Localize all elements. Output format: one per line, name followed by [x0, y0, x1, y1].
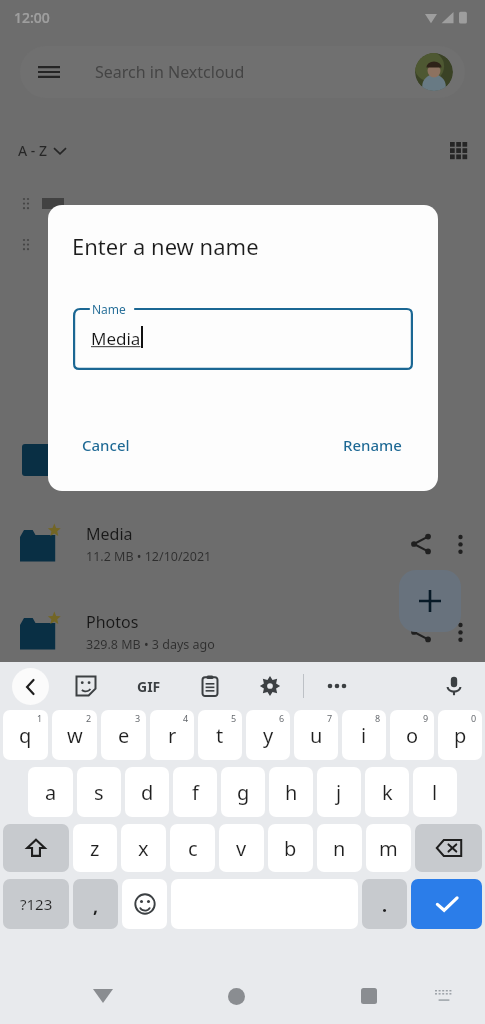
button[interactable]: j — [317, 767, 361, 817]
staticText: g — [237, 779, 250, 806]
button[interactable]: Photos — [0, 597, 485, 667]
button[interactable]: x — [121, 824, 166, 872]
staticText: 9 — [423, 712, 429, 724]
staticText: . — [382, 893, 388, 918]
staticText: GIF — [137, 677, 161, 696]
button[interactable]: Media — [0, 509, 485, 579]
button[interactable]: More options — [458, 534, 463, 554]
button[interactable]: m — [366, 824, 411, 872]
staticText: b — [284, 835, 297, 862]
button[interactable]: . — [362, 879, 407, 929]
staticText: Media — [86, 523, 133, 545]
staticText: 5 — [231, 712, 237, 724]
button[interactable]: GIF — [131, 674, 167, 698]
button[interactable]: Settings — [255, 671, 285, 701]
button[interactable]: o — [390, 710, 434, 760]
button[interactable]: Clipboard — [195, 671, 225, 701]
staticText: s — [94, 779, 104, 806]
staticText: j — [336, 779, 342, 806]
button[interactable]: ?123 — [3, 879, 69, 929]
staticText: c — [188, 835, 198, 862]
button[interactable]: Rename — [335, 427, 410, 463]
button[interactable]: Shift — [3, 824, 69, 872]
button[interactable]: Add — [399, 570, 461, 632]
button[interactable]: Switch to grid view — [450, 142, 467, 159]
button[interactable]: Back — [83, 976, 123, 1016]
button[interactable]: z — [73, 824, 117, 872]
button[interactable]: a — [28, 767, 73, 817]
button[interactable]: d — [125, 767, 169, 817]
button[interactable]: t — [198, 710, 242, 760]
button[interactable]: y — [246, 710, 290, 760]
button[interactable]: c — [170, 824, 215, 872]
button[interactable]: , — [73, 879, 118, 929]
staticText: 11.2 MB • 12/10/2021 — [86, 548, 212, 565]
staticText: 329.8 MB • 3 days ago — [86, 636, 215, 653]
button[interactable]: Switch keyboard — [427, 979, 461, 1013]
button[interactable]: i — [342, 710, 386, 760]
button[interactable]: f — [173, 767, 217, 817]
staticText: Cancel — [82, 435, 130, 455]
button[interactable]: Open navigation menu — [20, 46, 465, 98]
button[interactable]: A - Z — [18, 141, 66, 160]
staticText: u — [310, 722, 323, 749]
staticText: 7 — [327, 712, 333, 724]
staticText: Photos — [86, 611, 139, 633]
staticText: 8 — [375, 712, 381, 724]
staticText: , — [93, 894, 99, 919]
staticText: Name — [92, 301, 126, 317]
button[interactable]: n — [317, 824, 362, 872]
button[interactable]: Voice input — [441, 673, 467, 699]
staticText: n — [333, 835, 346, 862]
button[interactable]: Emoji — [122, 879, 167, 929]
button[interactable]: s — [77, 767, 121, 817]
staticText: h — [285, 779, 298, 806]
staticText: Enter a new name — [72, 231, 259, 261]
staticText: Search in Nextcloud — [95, 61, 245, 83]
staticText: p — [454, 722, 467, 749]
button[interactable]: More — [322, 674, 352, 698]
button[interactable]: q — [3, 710, 48, 760]
staticText: 0 — [471, 712, 477, 724]
staticText: a — [45, 779, 57, 806]
button[interactable]: Share — [410, 533, 432, 555]
button[interactable]: g — [221, 767, 265, 817]
button[interactable]: v — [219, 824, 264, 872]
staticText: r — [168, 722, 177, 749]
button[interactable]: Account — [415, 53, 453, 91]
button[interactable]: p — [438, 710, 482, 760]
button[interactable]: Cancel — [74, 427, 138, 463]
button[interactable]: w — [52, 710, 97, 760]
button[interactable]: Share — [410, 621, 432, 643]
staticText: 6 — [279, 712, 285, 724]
staticText: w — [67, 722, 83, 749]
staticText: Rename — [343, 435, 402, 455]
button[interactable]: r — [150, 710, 194, 760]
button[interactable]: Home — [216, 976, 256, 1016]
button[interactable]: u — [294, 710, 338, 760]
button[interactable]: l — [413, 767, 457, 817]
staticText: q — [19, 722, 32, 749]
staticText: z — [90, 835, 100, 862]
staticText: y — [263, 722, 274, 749]
button[interactable]: Close toolbar — [12, 668, 49, 705]
staticText: e — [118, 722, 130, 749]
button[interactable]: Stickers — [71, 671, 101, 701]
button[interactable]: b — [268, 824, 313, 872]
button[interactable]: Recents — [349, 976, 389, 1016]
button[interactable]: h — [269, 767, 313, 817]
button[interactable]: Open navigation menu — [38, 61, 60, 83]
button[interactable]: More options — [458, 622, 463, 642]
staticText: 3 — [135, 712, 141, 724]
staticText: A - Z — [18, 141, 47, 160]
button[interactable]: Done — [411, 879, 482, 929]
button[interactable]: Backspace — [415, 824, 482, 872]
button[interactable]: e — [101, 710, 146, 760]
staticText: x — [138, 835, 149, 862]
staticText: m — [379, 835, 398, 862]
staticText: 1 — [37, 712, 43, 724]
button[interactable]: k — [365, 767, 409, 817]
staticText: f — [192, 779, 199, 806]
staticText: k — [382, 779, 393, 806]
